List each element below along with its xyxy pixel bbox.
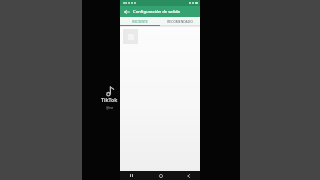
- button[interactable]: Home: [157, 172, 164, 179]
- staticText: Configuración de salida: [133, 9, 181, 15]
- button[interactable]: Back: [185, 172, 192, 179]
- staticText: @ne: [106, 105, 114, 110]
- staticText: RECIENTE: [132, 19, 148, 23]
- button[interactable]: [123, 29, 138, 44]
- staticText: TikTok: [101, 97, 118, 104]
- staticText: RECOMENDADO: [167, 19, 193, 23]
- button[interactable]: RECOMENDADO: [160, 17, 200, 25]
- button[interactable]: RECIENTE: [120, 17, 160, 25]
- button[interactable]: Recent apps: [128, 172, 135, 179]
- button[interactable]: Back: [123, 8, 131, 16]
